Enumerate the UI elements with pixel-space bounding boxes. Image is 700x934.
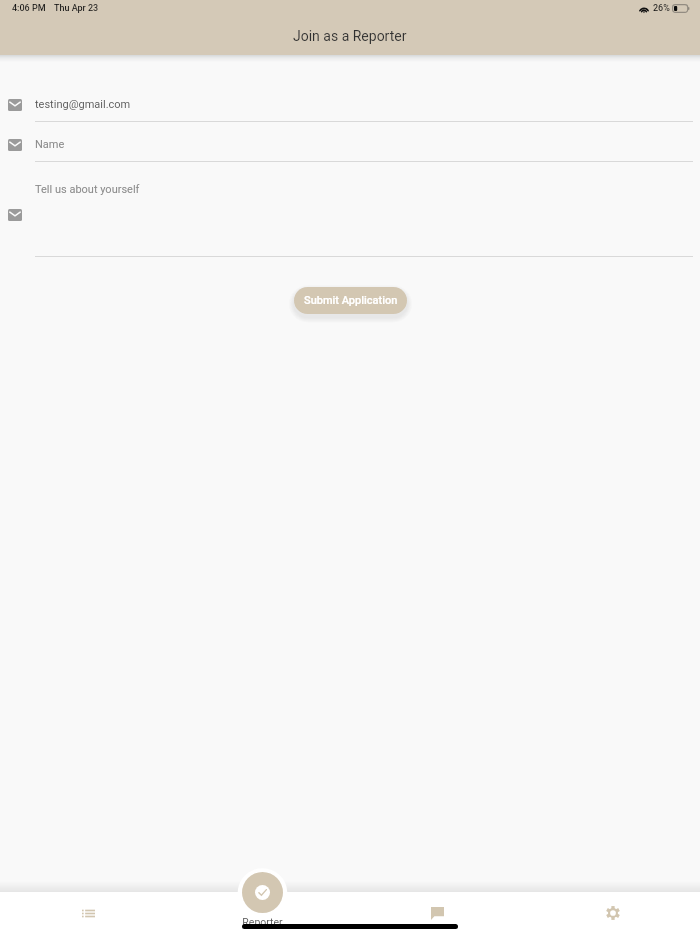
staticText: Name: [35, 138, 65, 151]
button[interactable]: Name: [0, 132, 700, 162]
staticText: Tell us about yourself: [35, 183, 140, 196]
staticText: 26%: [653, 3, 670, 14]
staticText: Join as a Reporter: [293, 28, 407, 44]
button[interactable]: testing@gmail.com: [0, 92, 700, 122]
staticText: Thu Apr 23: [54, 3, 99, 14]
button[interactable]: Settings: [593, 893, 633, 933]
staticText: testing@gmail.com: [35, 98, 131, 111]
button[interactable]: Reporter: [240, 872, 285, 928]
button[interactable]: Tell us about yourself: [0, 176, 700, 257]
button[interactable]: Submit Application: [294, 287, 407, 314]
button[interactable]: Messages: [417, 893, 457, 933]
staticText: 4:06 PM: [12, 3, 46, 14]
staticText: Reporter: [240, 916, 285, 928]
staticText: Submit Application: [304, 294, 398, 307]
button[interactable]: Stories: [68, 893, 108, 933]
